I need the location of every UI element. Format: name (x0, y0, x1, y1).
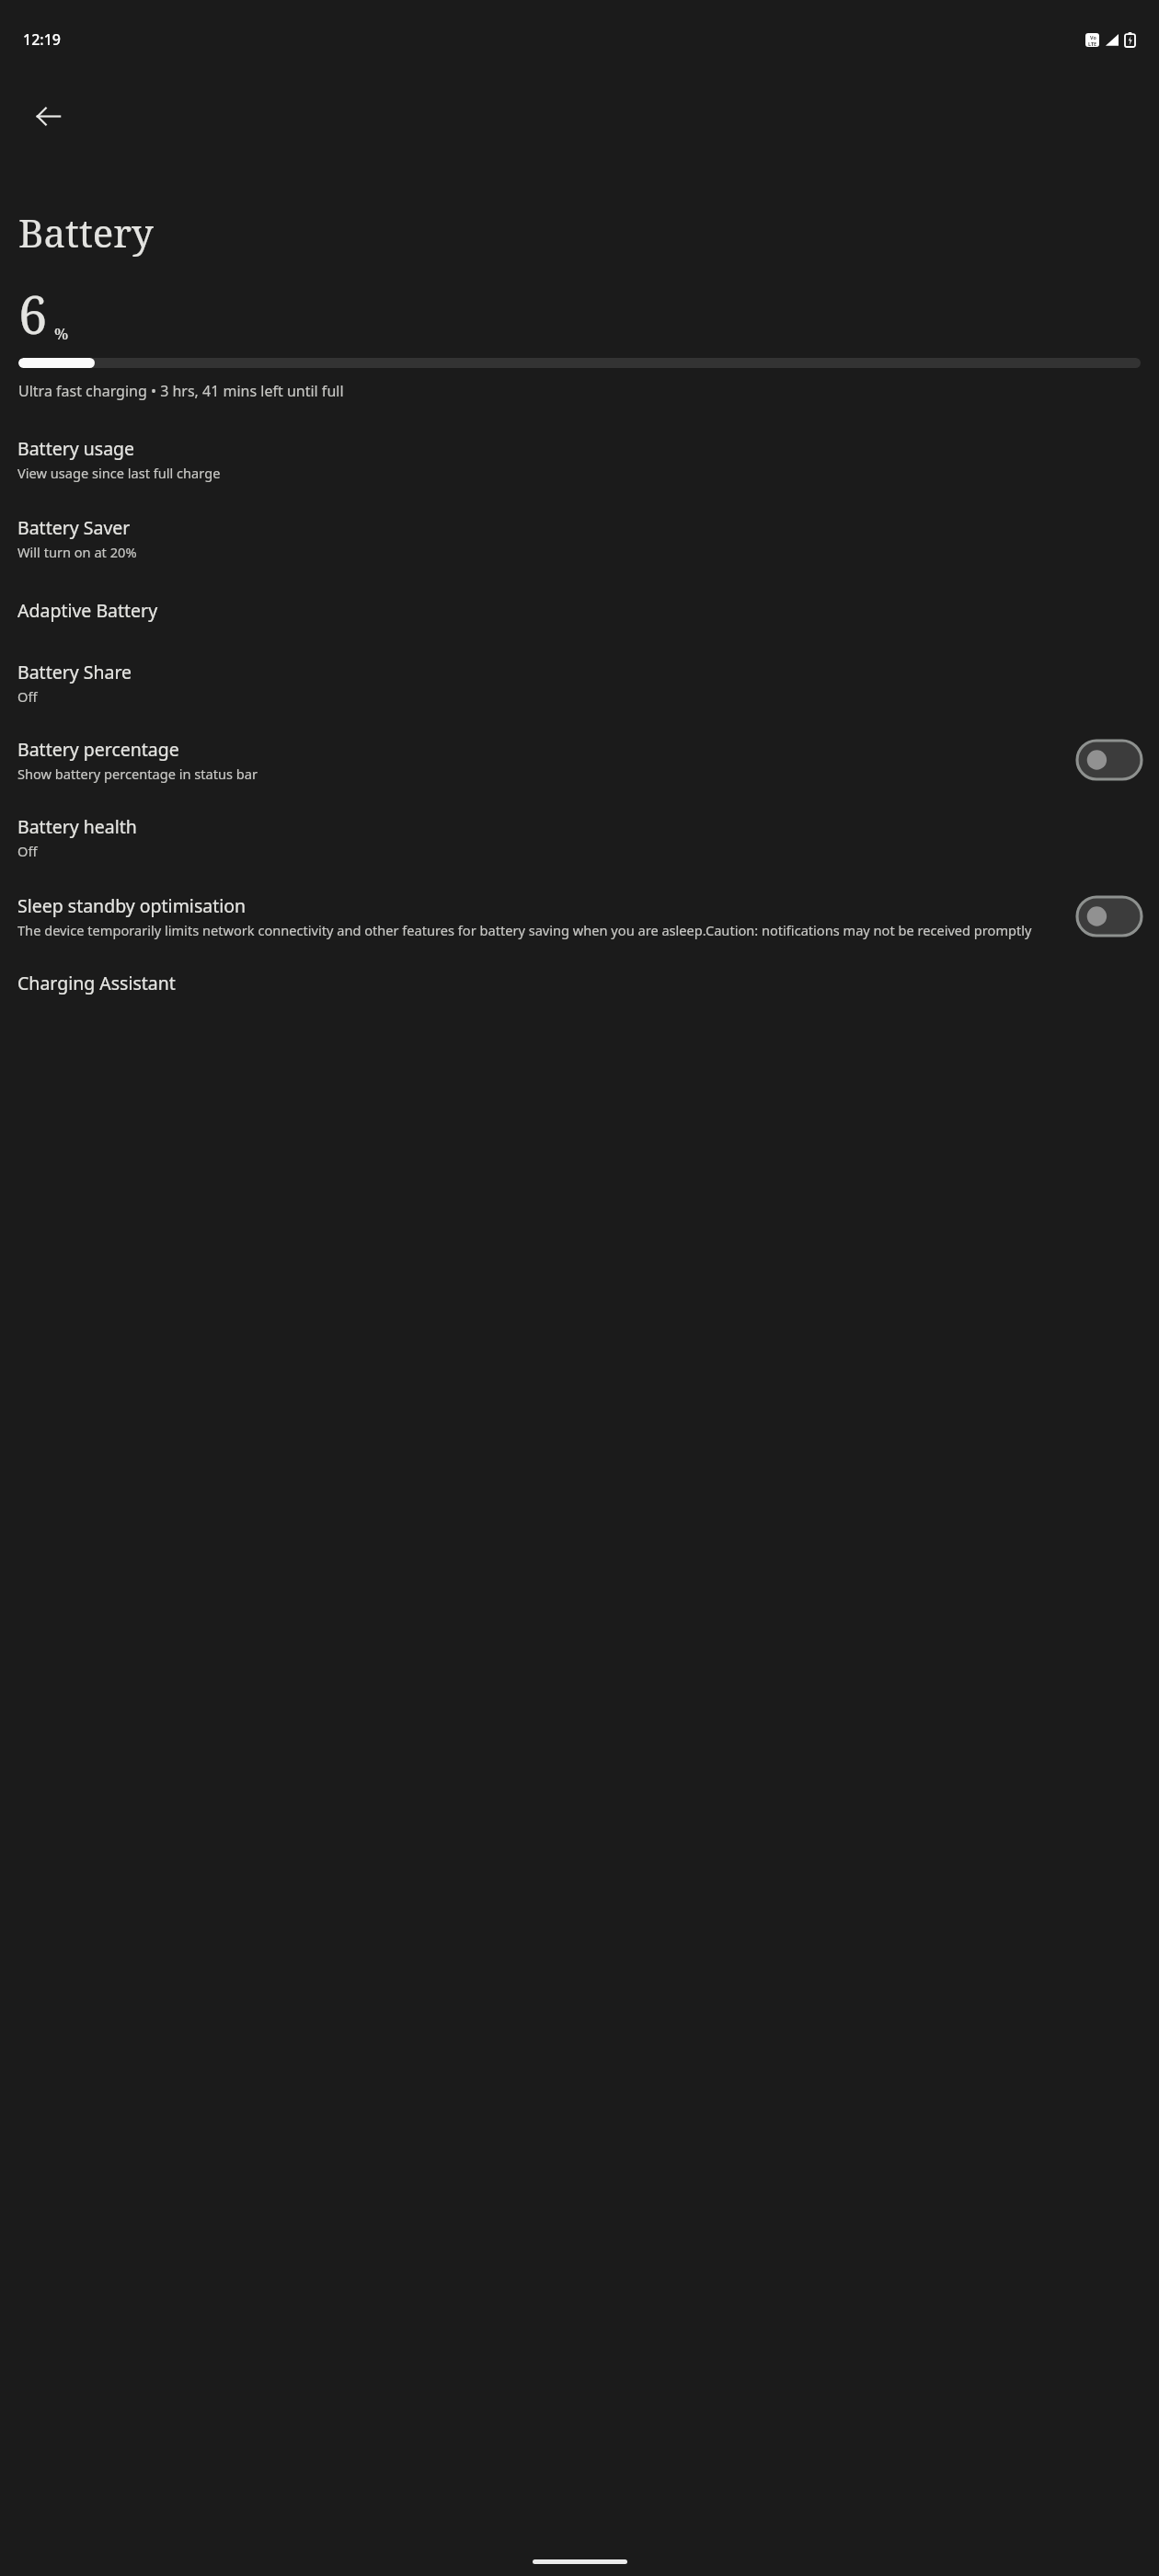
staticText: 6 (18, 279, 48, 349)
staticText: Vo (1090, 34, 1096, 40)
button[interactable]: Battery usage (0, 421, 1159, 499)
staticText: 12:19 (23, 29, 61, 50)
staticText: Battery health (17, 814, 137, 839)
staticText: Will turn on at 20% (17, 543, 137, 561)
button[interactable]: Sleep standby optimisation (0, 877, 1159, 952)
button[interactable]: Battery percentage (0, 722, 1159, 798)
staticText: The device temporarily limits network co… (17, 921, 1032, 939)
staticText: Battery usage (17, 436, 135, 461)
staticText: Show battery percentage in status bar (17, 765, 258, 783)
staticText: Off (17, 842, 38, 860)
button[interactable]: Back (4, 79, 92, 153)
button[interactable]: Toggle (1077, 897, 1142, 936)
staticText: Battery Saver (17, 515, 131, 540)
button[interactable]: Battery Saver (0, 499, 1159, 578)
button[interactable]: Battery health (0, 798, 1159, 877)
button[interactable]: Battery Share (0, 643, 1159, 722)
staticText: % (54, 323, 69, 344)
button[interactable]: Adaptive Battery (0, 578, 1159, 643)
staticText: Sleep standby optimisation (17, 893, 247, 918)
staticText: Battery Share (17, 660, 132, 684)
staticText: Charging Assistant (17, 971, 176, 995)
staticText: View usage since last full charge (17, 464, 221, 482)
staticText: Adaptive Battery (17, 598, 158, 623)
staticText: Ultra fast charging • 3 hrs, 41 mins lef… (18, 381, 344, 401)
staticText: Off (17, 687, 38, 706)
button[interactable]: Charging Assistant (0, 952, 1159, 1005)
button[interactable]: Toggle (1077, 741, 1142, 779)
staticText: LTE (1088, 40, 1097, 47)
staticText: Battery percentage (17, 737, 179, 762)
staticText: Battery (18, 206, 154, 259)
